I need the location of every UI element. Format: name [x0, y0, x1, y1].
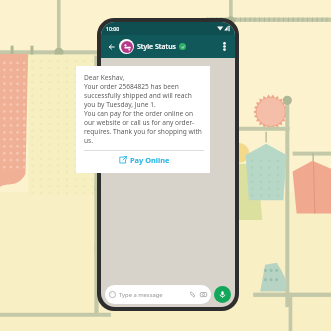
staticText: 10:00: [106, 25, 120, 32]
button[interactable]: Type a message: [105, 285, 211, 304]
button[interactable]: More options: [218, 40, 231, 53]
staticText: Style Status: [137, 42, 176, 52]
button[interactable]: Pay Online: [84, 151, 204, 169]
button[interactable]: Voice message: [214, 286, 231, 303]
button[interactable]: Profile: [119, 39, 134, 54]
staticText: Type a message: [119, 291, 163, 299]
staticText: Dear Keshav, Your order 25684825 has bee…: [84, 73, 204, 145]
other: Attach: [189, 291, 196, 298]
other: Camera: [200, 291, 207, 298]
staticText: Pay Online: [130, 155, 170, 165]
button[interactable]: Back: [105, 40, 118, 53]
